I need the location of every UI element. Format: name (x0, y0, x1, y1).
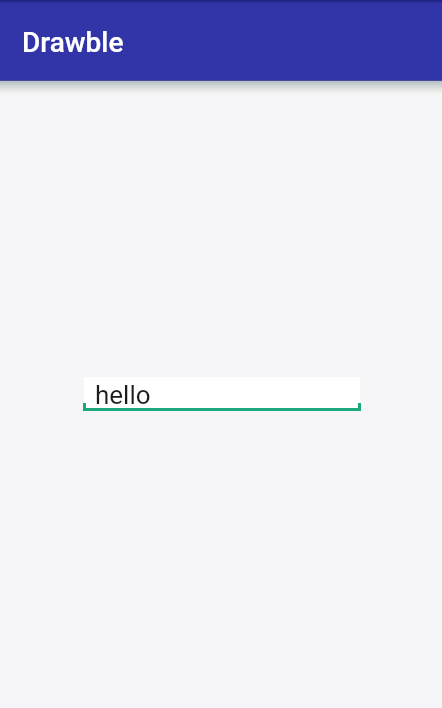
staticText: hello (95, 380, 151, 410)
staticText: Drawble (22, 26, 124, 59)
button[interactable]: Text field (83, 377, 361, 411)
button[interactable]: Drawble app bar (0, 4, 442, 80)
